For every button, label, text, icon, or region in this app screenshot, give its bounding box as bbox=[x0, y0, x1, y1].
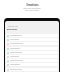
staticText: Emotions bbox=[26, 3, 39, 7]
button[interactable] bbox=[6, 42, 58, 45]
button[interactable] bbox=[6, 68, 58, 71]
button[interactable] bbox=[6, 63, 58, 66]
button[interactable] bbox=[6, 51, 58, 54]
staticText: Track and understand your daily moods bbox=[23, 7, 41, 11]
button[interactable] bbox=[6, 34, 58, 37]
staticText: Emotions bbox=[7, 28, 18, 31]
button[interactable] bbox=[6, 59, 58, 62]
button[interactable] bbox=[6, 47, 58, 50]
button[interactable] bbox=[6, 38, 58, 41]
staticText: How are you? bbox=[8, 25, 19, 27]
button[interactable] bbox=[6, 55, 58, 58]
